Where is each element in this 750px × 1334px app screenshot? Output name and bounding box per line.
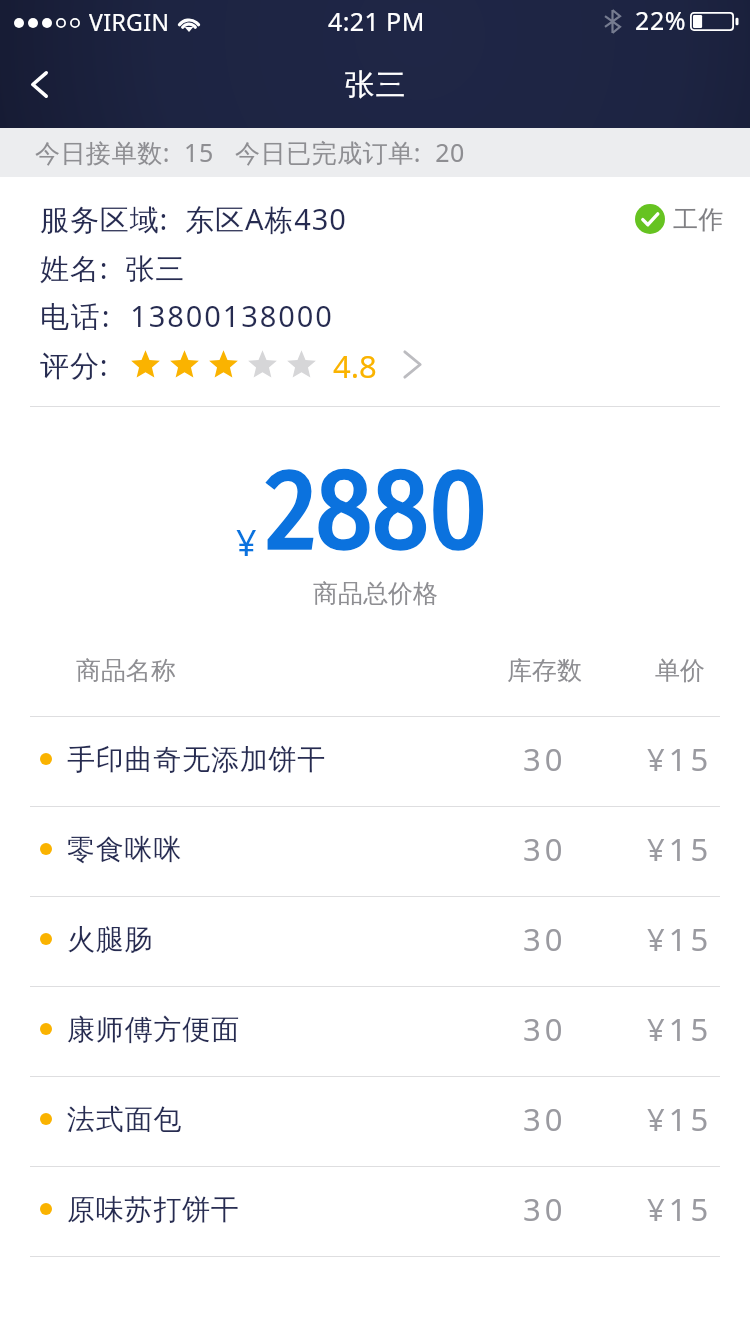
- staticText: 原味苏打饼干: [67, 1192, 240, 1227]
- button[interactable]: 康师傅方便面: [0, 986, 750, 1076]
- staticText: 商品总价格: [313, 578, 438, 609]
- staticText: 火腿肠: [67, 922, 154, 957]
- button[interactable]: 原味苏打饼干: [0, 1166, 750, 1256]
- staticText: 30: [523, 828, 567, 870]
- staticText: 今日接单数: 15 今日已完成订单: 20: [35, 135, 465, 169]
- button[interactable]: 零食咪咪: [0, 806, 750, 896]
- staticText: 2880: [266, 442, 488, 578]
- button[interactable]: 火腿肠: [0, 896, 750, 986]
- staticText: 法式面包: [67, 1102, 183, 1137]
- staticText: 手印曲奇无添加饼干: [67, 742, 327, 777]
- button[interactable]: Back: [7, 52, 71, 116]
- staticText: 电话: 13800138000: [40, 296, 334, 336]
- staticText: VIRGIN: [89, 6, 170, 37]
- staticText: 商品名称: [76, 655, 176, 686]
- staticText: 库存数: [507, 655, 582, 686]
- staticText: ¥15: [647, 738, 713, 780]
- staticText: 30: [523, 1098, 567, 1140]
- staticText: ¥15: [647, 918, 713, 960]
- staticText: 零食咪咪: [67, 832, 183, 867]
- staticText: ¥15: [647, 828, 713, 870]
- staticText: 30: [523, 918, 567, 960]
- staticText: 服务区域: 东区A栋430: [40, 199, 347, 239]
- staticText: 30: [523, 738, 567, 780]
- staticText: 工作: [673, 204, 724, 235]
- button[interactable]: 手印曲奇无添加饼干: [0, 716, 750, 806]
- staticText: ¥15: [647, 1098, 713, 1140]
- staticText: 姓名: 张三: [40, 248, 186, 288]
- staticText: 22%: [635, 3, 687, 37]
- staticText: ¥15: [647, 1188, 713, 1230]
- button[interactable]: 工作: [635, 202, 724, 236]
- staticText: ¥15: [647, 1008, 713, 1050]
- staticText: 评分:: [40, 345, 109, 383]
- staticText: 康师傅方便面: [67, 1012, 240, 1047]
- staticText: 30: [523, 1008, 567, 1050]
- button[interactable]: 评分:: [40, 345, 422, 383]
- staticText: 4.8: [333, 345, 377, 383]
- staticText: ¥: [236, 518, 257, 567]
- staticText: 单价: [655, 655, 705, 686]
- button[interactable]: 法式面包: [0, 1076, 750, 1166]
- staticText: 30: [523, 1188, 567, 1230]
- staticText: 4:21 PM: [328, 4, 425, 38]
- staticText: 张三: [344, 66, 406, 104]
